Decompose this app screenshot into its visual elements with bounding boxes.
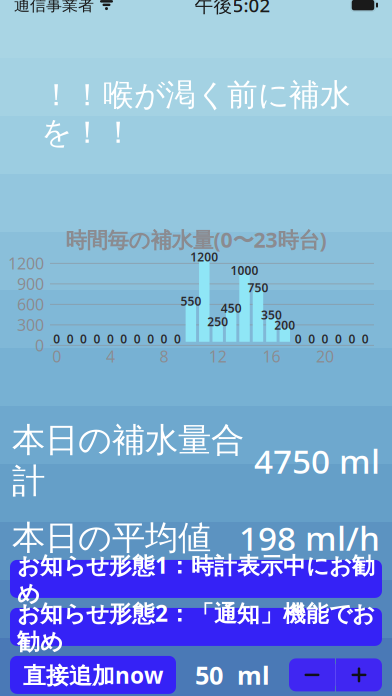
staticText: 通信事業者 [14,0,94,15]
button[interactable]: お知らせ形態1：時計表示中にお勧め [10,560,382,598]
staticText: お知らせ形態2：「通知」機能でお勧め [17,598,375,656]
staticText: 0 [67,331,74,347]
staticText: 0 [147,331,154,347]
staticText: 0 [321,331,328,347]
staticText: 900 [17,273,44,294]
staticText: 0 [120,331,127,347]
button[interactable]: Decrease amount [289,658,335,691]
staticText: 198 ml/h [239,516,380,560]
staticText: 0 [174,331,181,347]
staticText: 1000 [230,262,258,278]
staticText: 8 [159,346,168,367]
staticText: 200 [274,317,295,333]
staticText: 0 [160,331,167,347]
staticText: お知らせ形態1：時計表示中にお勧め [17,550,375,608]
staticText: 本日の平均値 [12,517,211,558]
staticText: 0 [80,331,87,347]
staticText: 4750 ml [254,439,380,483]
staticText: 20 [316,346,334,367]
staticText: 0 [308,331,315,347]
staticText: 750 [247,279,268,295]
staticText: 4 [106,346,115,367]
staticText: 350 [261,307,282,323]
staticText: 12 [209,346,227,367]
staticText: 午後5:02 [194,0,270,17]
staticText: 0 [134,331,141,347]
staticText: 0 [93,331,100,347]
button[interactable]: お知らせ形態2：「通知」機能でお勧め [10,608,382,646]
staticText: 0 [107,331,114,347]
staticText: 直接追加now [23,660,163,690]
staticText: 50 ml [195,658,270,692]
staticText: 600 [17,294,44,315]
staticText: 0 [362,331,369,347]
staticText: 1200 [190,249,218,265]
staticText: 1200 [8,253,44,274]
staticText: 450 [221,300,242,316]
button[interactable]: 直接追加now [10,656,176,694]
staticText: 時間毎の補水量(0〜23時台) [65,225,326,254]
staticText: 0 [52,346,61,367]
staticText: 550 [180,293,201,309]
staticText: 300 [17,314,44,335]
staticText: 本日の補水量合計 [12,420,244,502]
button[interactable]: Increase amount [336,658,382,691]
staticText: 0 [53,331,60,347]
staticText: ！！喉が渇く前に補水を！！ [41,76,351,151]
staticText: 0 [348,331,355,347]
staticText: 16 [262,346,280,367]
staticText: 0 [295,331,302,347]
staticText: 250 [207,314,228,330]
staticText: 0 [35,335,44,356]
staticText: 0 [335,331,342,347]
